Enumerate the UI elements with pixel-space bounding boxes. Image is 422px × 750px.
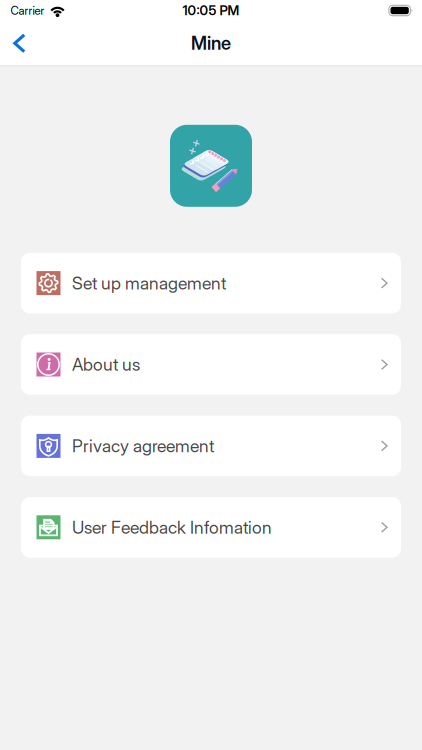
staticText: User Feedback Infomation [72, 517, 272, 538]
staticText: Carrier [10, 3, 44, 17]
staticText: Mine [191, 32, 231, 54]
button[interactable]: Privacy agreement [21, 416, 401, 476]
button[interactable]: Back [0, 21, 42, 65]
button[interactable]: Set up management [21, 253, 401, 313]
staticText: Set up management [72, 272, 226, 294]
button[interactable]: User Feedback Infomation [21, 497, 401, 558]
staticText: Privacy agreement [72, 435, 214, 456]
staticText: About us [72, 354, 140, 375]
staticText: 10:05 PM [182, 2, 239, 18]
button[interactable]: About us [21, 334, 401, 395]
